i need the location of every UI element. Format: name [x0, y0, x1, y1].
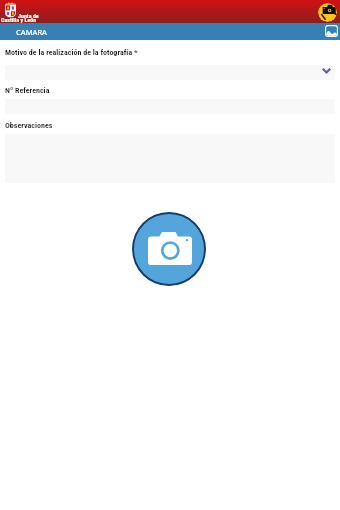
staticText: Castilla y León	[1, 16, 37, 23]
staticText: CAMARA	[16, 27, 47, 37]
button[interactable]: Galería	[325, 25, 338, 37]
staticText: Junta de	[18, 12, 39, 19]
staticText: Motivo de la realización de la fotografí…	[5, 48, 138, 57]
staticText: Nº Referencia	[5, 86, 50, 95]
button[interactable]: Tomar fotografía	[132, 212, 206, 286]
button[interactable]: Motivo de la realización de la fotografí…	[5, 65, 335, 80]
staticText: Observaciones	[5, 121, 53, 130]
button[interactable]: Aplicación Cámara	[318, 3, 337, 22]
